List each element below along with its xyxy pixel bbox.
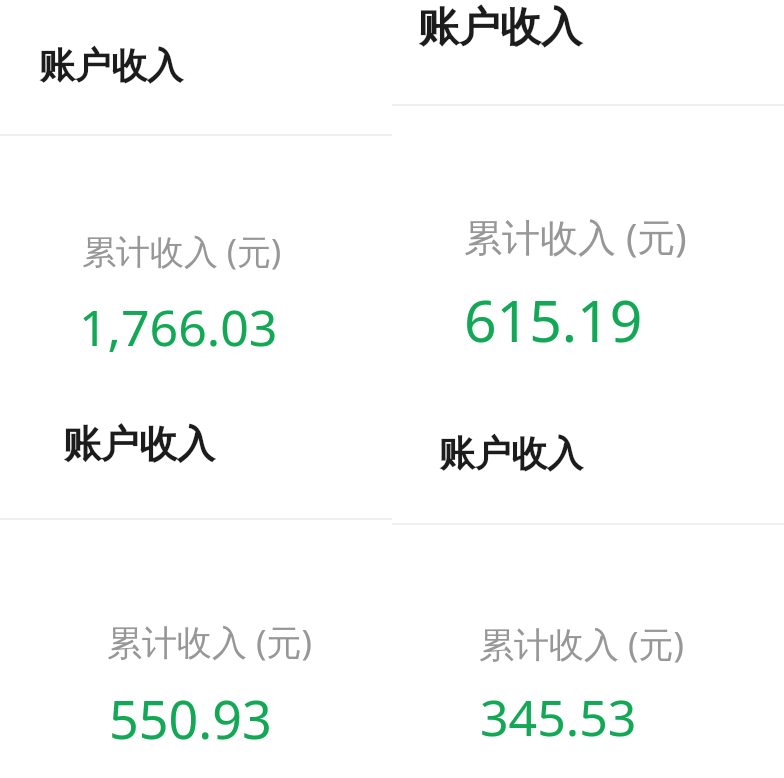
staticText: 1,766.03 [79, 293, 278, 361]
button[interactable]: Account income card [392, 389, 784, 778]
staticText: 累计收入 (元) [82, 228, 282, 274]
staticText: 615.19 [464, 281, 643, 359]
staticText: 账户收入 [439, 431, 583, 476]
button[interactable]: 账户收入 [418, 2, 582, 54]
staticText: 550.93 [109, 683, 272, 754]
staticText: 账户收入 [39, 43, 183, 88]
staticText: 累计收入 (元) [464, 210, 687, 262]
staticText: 账户收入 [63, 420, 215, 468]
button[interactable]: Account income card [0, 0, 392, 389]
button[interactable]: 账户收入 [439, 431, 583, 476]
staticText: 345.53 [480, 683, 637, 751]
staticText: 累计收入 (元) [479, 620, 685, 668]
button[interactable]: Account income card [392, 0, 784, 389]
staticText: 累计收入 (元) [107, 618, 313, 666]
button[interactable]: Account income card [0, 389, 392, 778]
button[interactable]: 账户收入 [63, 420, 215, 468]
button[interactable]: 账户收入 [39, 43, 183, 88]
staticText: 账户收入 [418, 2, 582, 54]
